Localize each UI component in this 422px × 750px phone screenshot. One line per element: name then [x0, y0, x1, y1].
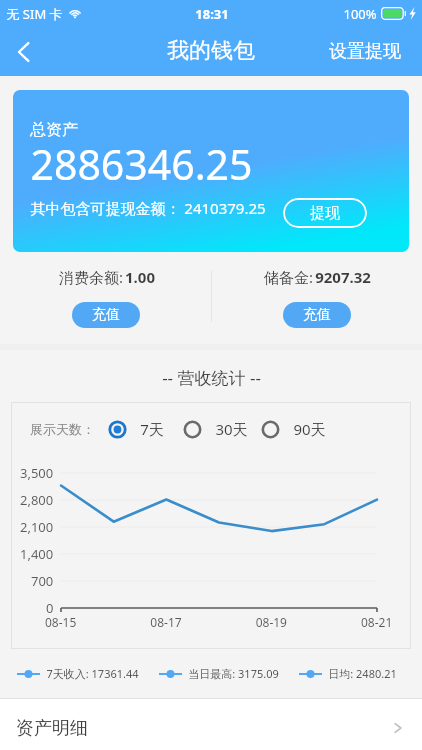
staticText: 充值 [303, 306, 331, 324]
button[interactable]: 资产明细 [0, 699, 422, 750]
staticText: 设置提现 [329, 40, 401, 63]
button[interactable]: 7天 [108, 419, 164, 439]
staticText: 日均: 2480.21 [328, 666, 397, 681]
button[interactable]: 充值 [72, 302, 140, 328]
staticText: 当日最高: 3175.09 [188, 666, 279, 681]
staticText: 提现 [310, 204, 340, 223]
staticText: 9207.32 [315, 267, 371, 287]
staticText: 无 SIM 卡 [6, 5, 63, 23]
staticText: 2886346.25 [30, 136, 253, 192]
staticText: 储备金: [262, 267, 315, 287]
staticText: 18:31 [195, 5, 229, 23]
staticText: 总资产 [30, 120, 78, 140]
button[interactable]: Back [0, 28, 48, 76]
staticText: 其中包含可提现金额： 2410379.25 [30, 198, 266, 218]
staticText: 1.00 [125, 267, 155, 287]
staticText: 7天收入: 17361.44 [46, 666, 139, 681]
staticText: 消费余额: [57, 267, 125, 287]
staticText: 充值 [92, 306, 120, 324]
staticText: 7天 [140, 419, 164, 439]
button[interactable]: 充值 [283, 302, 351, 328]
staticText: 我的钱包 [167, 37, 255, 65]
staticText: 展示天数： [30, 421, 95, 437]
button[interactable]: 30天 [183, 419, 248, 439]
staticText: 资产明细 [16, 717, 88, 740]
staticText: 90天 [293, 419, 326, 439]
staticText: 100% [343, 5, 377, 23]
staticText: -- 营收统计 -- [162, 366, 261, 389]
staticText: 30天 [215, 419, 248, 439]
button[interactable]: 提现 [283, 198, 367, 228]
button[interactable]: 90天 [261, 419, 326, 439]
button[interactable]: 设置提现 [315, 28, 422, 75]
